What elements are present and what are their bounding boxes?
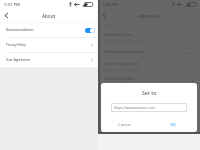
staticText: Cache, cookies, history — [104, 82, 140, 86]
button[interactable]: User Agreement — [0, 53, 97, 67]
button[interactable]: Recommendations — [0, 23, 97, 37]
button[interactable]: Cancel — [101, 118, 149, 132]
staticText: https://www.amazon.com — [114, 105, 155, 110]
staticText: 7:48 PM — [102, 2, 118, 8]
button[interactable]: Restore default location — [98, 59, 200, 74]
staticText: User Agreement — [6, 58, 31, 62]
button[interactable]: Clear browsing data — [98, 74, 200, 89]
staticText: Advanced — [138, 13, 160, 19]
staticText: Restore default location — [104, 62, 140, 66]
button[interactable]: Back — [98, 9, 111, 22]
staticText: Privacy Policy — [6, 43, 26, 47]
staticText: Set to — [142, 89, 157, 96]
button[interactable]: Downloads location — [98, 29, 200, 45]
staticText: OK — [170, 122, 176, 128]
staticText: 7:41 PM — [4, 2, 20, 8]
button[interactable]: Privacy Policy — [0, 38, 97, 52]
staticText: About — [42, 13, 56, 19]
staticText: Downloads location — [104, 33, 134, 37]
staticText: Cancel — [118, 122, 132, 128]
button[interactable]: Multi-window management — [98, 45, 200, 59]
staticText: Multi-window management — [104, 50, 145, 54]
staticText: Recommendations — [6, 28, 34, 32]
button[interactable]: OK — [149, 118, 197, 132]
button[interactable]: Back — [0, 9, 13, 22]
staticText: Clear browsing data — [104, 77, 134, 81]
